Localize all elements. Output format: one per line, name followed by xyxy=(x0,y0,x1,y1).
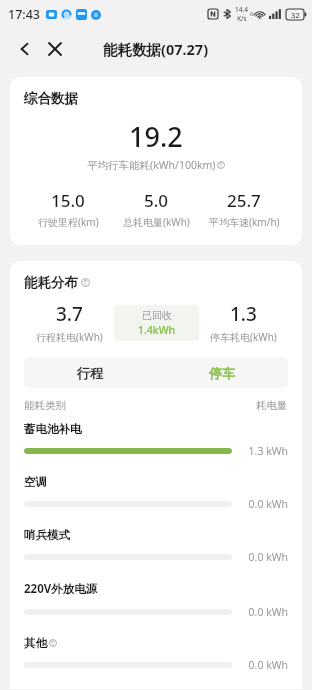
staticText: 平均行车能耗(kWh/100km) xyxy=(87,158,216,172)
staticText: 能耗分布 xyxy=(24,274,78,291)
button[interactable]: 220V外放电源 xyxy=(24,581,288,636)
staticText: 19.2 xyxy=(129,118,183,155)
staticText: 0.0 kWh xyxy=(248,658,288,672)
staticText: 1.3 xyxy=(230,301,257,327)
button[interactable]: 哨兵模式 xyxy=(24,528,288,581)
button[interactable]: 空调 xyxy=(24,475,288,528)
staticText: 哨兵模式 xyxy=(24,528,70,542)
staticText: 15.0 xyxy=(51,189,85,212)
staticText: 1.4kWh xyxy=(138,323,176,337)
staticText: 25.7 xyxy=(227,189,261,212)
staticText: 14.4 xyxy=(235,5,248,14)
staticText: 平均车速(km/h) xyxy=(209,215,280,229)
staticText: 已回收 xyxy=(142,309,172,322)
staticText: 1.3 kWh xyxy=(248,444,288,458)
staticText: 3.7 xyxy=(56,301,83,327)
staticText: 综合数据 xyxy=(24,90,78,107)
staticText: 0.0 kWh xyxy=(248,605,288,619)
staticText: 能耗数据(07.27) xyxy=(103,39,209,59)
staticText: 5.0 xyxy=(144,189,169,212)
staticText: 空调 xyxy=(24,475,47,489)
staticText: 耗电量 xyxy=(256,399,288,412)
button[interactable]: 蓄电池补电 xyxy=(24,422,288,475)
staticText: 能耗类别 xyxy=(24,399,66,412)
staticText: 17:43 xyxy=(8,6,41,23)
staticText: 32 xyxy=(291,10,300,20)
button[interactable]: 其他 xyxy=(24,636,288,689)
staticText: 蓄电池补电 xyxy=(24,422,82,436)
staticText: 0.0 kWh xyxy=(248,497,288,511)
staticText: 行驶里程(km) xyxy=(38,215,99,229)
staticText: 0.0 kWh xyxy=(248,550,288,564)
staticText: 其他 xyxy=(24,636,47,650)
button[interactable]: 行程 xyxy=(24,358,156,388)
staticText: K/s xyxy=(237,14,247,23)
staticText: 行程 xyxy=(77,365,103,381)
button[interactable]: Back xyxy=(10,34,40,64)
button[interactable]: Close xyxy=(40,34,70,64)
staticText: 行程耗电(kWh) xyxy=(36,330,103,344)
staticText: 总耗电量(kWh) xyxy=(123,215,190,229)
staticText: 6 xyxy=(250,10,254,18)
staticText: 停车 xyxy=(209,365,235,381)
staticText: 220V外放电源 xyxy=(24,581,98,597)
staticText: 停车耗电(kWh) xyxy=(210,330,277,344)
button[interactable]: 停车 xyxy=(156,358,288,388)
